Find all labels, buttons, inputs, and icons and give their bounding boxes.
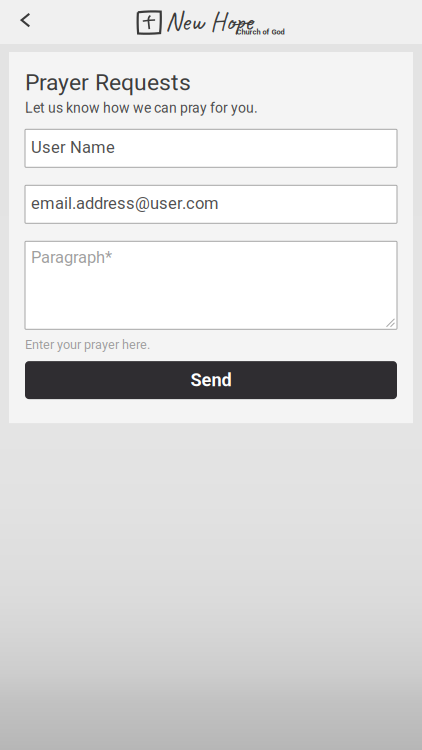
staticText: User Name xyxy=(31,138,115,157)
staticText: Let us know how we can pray for you. xyxy=(25,100,258,116)
staticText: Paragraph* xyxy=(31,248,112,267)
staticText: New Hope xyxy=(165,4,253,38)
button[interactable]: Back xyxy=(0,0,46,44)
staticText: Prayer Requests xyxy=(25,69,191,96)
staticText: Enter your prayer here. xyxy=(25,337,150,352)
staticText: Church of God xyxy=(236,27,284,36)
staticText: email.address@user.com xyxy=(31,194,219,213)
staticText: Send xyxy=(190,369,231,391)
button[interactable]: Send xyxy=(25,361,397,399)
